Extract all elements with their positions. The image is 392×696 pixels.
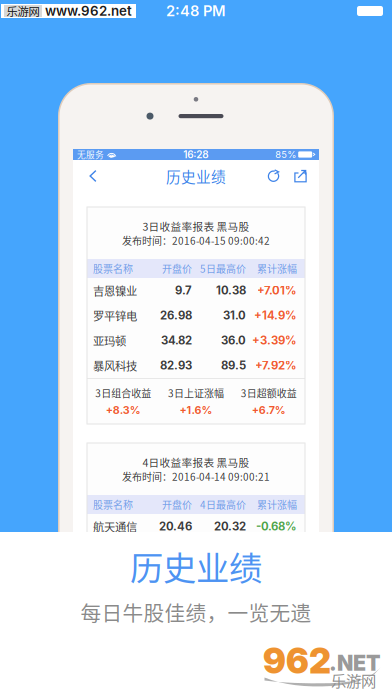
staticText: 962 [263, 640, 331, 682]
staticText: 发布时间：2016-04-14 09:00:21 [122, 469, 270, 484]
staticText: +14.9% [254, 545, 297, 558]
staticText: 4日收益率报表 黑马股 [142, 454, 249, 470]
staticText: 3日收益率报表 黑马股 [142, 218, 249, 234]
staticText: 26.98 [160, 309, 192, 322]
staticText: +3.39% [252, 334, 297, 347]
staticText: 开盘价 [162, 497, 192, 512]
staticText: 20.32 [214, 520, 246, 533]
staticText: -0.68% [256, 520, 297, 533]
staticText: +7.92% [255, 359, 297, 372]
staticText: 股票名称 [93, 261, 133, 276]
staticText: 10.38 [216, 284, 246, 297]
staticText: 乐游网 [6, 3, 39, 19]
staticText: 无服务 [77, 148, 104, 161]
staticText: 3日上证涨幅 [168, 386, 224, 400]
staticText: +7.01% [257, 284, 297, 297]
staticText: 罗平锌电 [93, 307, 137, 324]
staticText: 暴风科技 [93, 357, 137, 374]
staticText: 34.82 [161, 334, 192, 347]
staticText: 89.5 [221, 359, 246, 372]
staticText: 16:28 [183, 148, 208, 161]
staticText: 累计涨幅 [257, 261, 297, 276]
button[interactable]: Refresh [260, 160, 287, 192]
button[interactable]: Back [78, 160, 108, 192]
staticText: 5日最高价 [200, 261, 246, 276]
staticText: 3日超额收益 [241, 386, 297, 400]
staticText: 历史业绩 [130, 542, 262, 590]
staticText: www.962.net [45, 3, 132, 19]
staticText: 9.7 [175, 284, 192, 297]
staticText: 31.0 [223, 545, 246, 558]
staticText: 4日最高价 [200, 497, 246, 512]
staticText: 乐游网 [331, 669, 376, 691]
staticText: 20.46 [159, 520, 192, 533]
staticText: 吉恩镍业 [93, 282, 137, 299]
staticText: 罗平锌电 [93, 543, 137, 560]
staticText: 每日牛股佳绩，一览无遗 [80, 597, 311, 627]
staticText: 85% [275, 149, 296, 160]
staticText: +1.6% [179, 403, 212, 416]
staticText: 累计涨幅 [257, 497, 297, 512]
staticText: 股票名称 [93, 497, 133, 512]
staticText: 36.0 [221, 334, 246, 347]
staticText: 2:48 PM [166, 2, 226, 20]
staticText: 31.0 [223, 309, 246, 322]
staticText: .NET [329, 650, 381, 676]
staticText: 发布时间：2016-04-15 09:00:42 [122, 233, 270, 248]
staticText: 亚玛顿 [93, 332, 126, 349]
button[interactable]: Share [287, 160, 314, 192]
staticText: 历史业绩 [166, 165, 226, 187]
staticText: 26.98 [160, 545, 192, 558]
staticText: 82.93 [160, 359, 192, 372]
staticText: +8.3% [106, 403, 141, 416]
staticText: 3日组合收益 [95, 386, 151, 400]
staticText: +6.7% [252, 403, 286, 416]
staticText: 开盘价 [162, 261, 192, 276]
staticText: +14.9% [254, 309, 297, 322]
staticText: 航天通信 [93, 518, 137, 535]
